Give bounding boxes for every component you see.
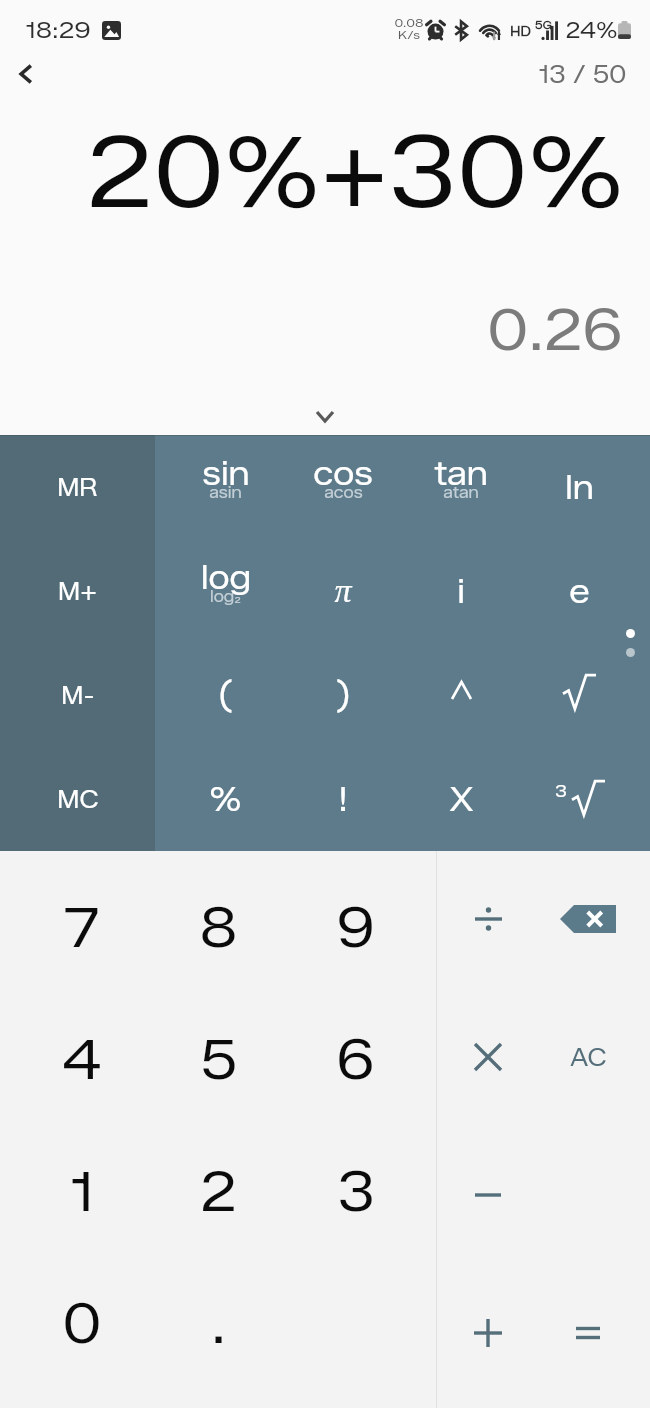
other: Backspace [560, 905, 616, 933]
staticText: 9 [336, 895, 375, 961]
button[interactable]: π [284, 539, 402, 643]
staticText: 18:29 [25, 16, 91, 44]
staticText: i [457, 571, 465, 611]
other: Minus [475, 1193, 501, 1197]
other: Divide [475, 908, 502, 930]
button[interactable]: 9 [287, 862, 424, 994]
staticText: X [449, 779, 474, 819]
button[interactable]: Minus [438, 1126, 538, 1264]
staticText: ln [565, 467, 594, 507]
button[interactable]: Back [0, 60, 52, 88]
button[interactable]: . [150, 1258, 287, 1390]
staticText: ( [218, 675, 233, 715]
button[interactable]: MC [0, 747, 155, 851]
staticText: K/s [398, 27, 420, 42]
button[interactable]: 5 [150, 994, 287, 1126]
staticText: 13 / 50 [538, 60, 627, 88]
staticText: 20%+30% [86, 113, 624, 232]
button[interactable]: MR [0, 435, 155, 539]
button[interactable]: % [167, 747, 284, 851]
staticText: log [201, 557, 251, 597]
staticText: 0.26 [487, 295, 623, 364]
staticText: acos [324, 483, 363, 502]
staticText: M- [61, 681, 95, 710]
button[interactable]: X [402, 747, 520, 851]
staticText: ) [336, 675, 351, 715]
staticText: 3 [337, 1159, 375, 1225]
other: Multiply [475, 1044, 501, 1070]
staticText: 4 [62, 1027, 102, 1093]
button[interactable]: Divide [438, 850, 538, 988]
button[interactable]: Multiply [438, 988, 538, 1126]
button[interactable]: log [167, 539, 284, 643]
staticText: 5 [200, 1027, 238, 1093]
button[interactable]: ln [520, 435, 638, 539]
button[interactable]: Power [402, 643, 520, 747]
button[interactable]: Backspace [538, 850, 638, 988]
button[interactable]: M+ [0, 539, 155, 643]
staticText: 0 [62, 1291, 102, 1357]
staticText: sin [202, 453, 250, 493]
staticText: asin [209, 483, 242, 502]
button[interactable]: 3 [287, 1126, 424, 1258]
staticText: 6 [336, 1027, 375, 1093]
button[interactable]: 13 / 50 [538, 60, 627, 88]
button[interactable]: cos [284, 435, 402, 539]
button[interactable]: Show history [302, 389, 348, 435]
button[interactable]: ! [284, 747, 402, 851]
button[interactable]: 4 [13, 994, 150, 1126]
staticText: 0.08 [394, 15, 424, 30]
button[interactable]: sin [167, 435, 284, 539]
staticText: 2 [200, 1159, 237, 1225]
staticText: . [211, 1291, 226, 1357]
staticText: e [569, 571, 590, 611]
button[interactable]: Equals [538, 1264, 638, 1402]
button[interactable]: 0 [13, 1258, 150, 1390]
button[interactable]: Square root [520, 643, 638, 747]
staticText: 24% [565, 17, 618, 44]
staticText: atan [443, 483, 479, 502]
button[interactable]: 8 [150, 862, 287, 994]
staticText: cos [313, 453, 373, 493]
other: Plus [474, 1319, 502, 1347]
staticText: M+ [58, 577, 97, 606]
staticText: tan [434, 453, 488, 493]
staticText: 3 [555, 781, 567, 802]
staticText: 5G [535, 18, 552, 31]
button[interactable]: 7 [13, 862, 150, 994]
button[interactable]: ) [284, 643, 402, 747]
button[interactable]: i [402, 539, 520, 643]
button[interactable]: Cube root [520, 747, 638, 851]
staticText: HD [510, 23, 531, 39]
button[interactable]: ( [167, 643, 284, 747]
button[interactable]: Plus [438, 1264, 538, 1402]
button[interactable]: tan [402, 435, 520, 539]
button[interactable]: 1 [13, 1126, 150, 1258]
other: Equals [576, 1326, 600, 1340]
staticText: π [334, 572, 352, 610]
staticText: % [209, 779, 242, 819]
staticText: 1 [70, 1159, 94, 1225]
staticText: MC [57, 785, 99, 814]
button[interactable]: 2 [150, 1126, 287, 1258]
staticText: AC [570, 1043, 607, 1072]
staticText: MR [57, 473, 98, 502]
button[interactable]: M- [0, 643, 155, 747]
staticText: 8 [199, 895, 238, 961]
staticText: ! [338, 779, 348, 819]
button[interactable]: e [520, 539, 638, 643]
staticText: 7 [64, 895, 99, 961]
staticText: log₂ [210, 587, 241, 606]
button[interactable]: AC [538, 988, 638, 1126]
button[interactable]: 6 [287, 994, 424, 1126]
